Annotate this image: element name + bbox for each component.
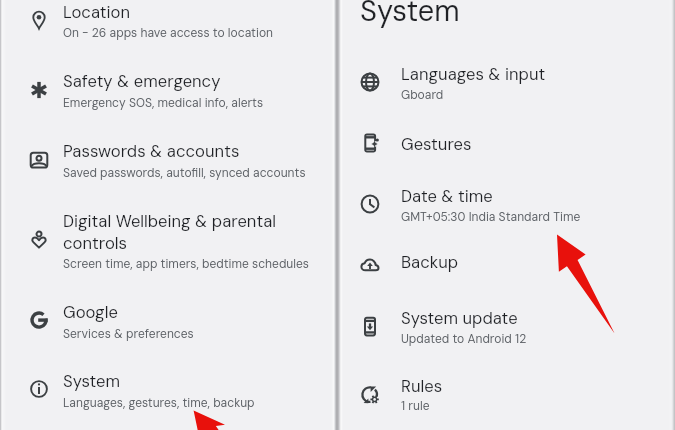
staticText: Gestures [401,134,472,156]
staticText: Languages, gestures, time, backup [63,395,255,411]
staticText: Languages & input [401,64,546,86]
staticText: Rules [401,376,443,398]
button[interactable]: Gestures [346,126,663,164]
staticText: Passwords & accounts [63,141,240,163]
staticText: On - 26 apps have access to location [63,25,273,41]
button[interactable]: Date and time [346,178,663,233]
button[interactable]: Backup [346,246,663,284]
button[interactable]: Safety and emergency [15,63,325,118]
button[interactable]: System [15,363,325,418]
button[interactable]: Rules [346,369,663,424]
button[interactable]: Passwords and accounts [15,133,325,188]
staticText: GMT+05:30 India Standard Time [401,209,581,225]
button[interactable]: Google [15,294,325,349]
staticText: Backup [401,252,459,274]
staticText: Emergency SOS, medical info, alerts [63,95,264,111]
staticText: Services & preferences [63,326,194,342]
button[interactable]: Digital Wellbeing and parental controls [15,203,293,279]
staticText: Updated to Android 12 [401,331,527,347]
staticText: System [63,371,121,393]
staticText: 1 rule [401,398,430,414]
staticText: Location [63,2,131,24]
staticText: Digital Wellbeing & parental controls [63,211,293,255]
staticText: System [360,0,460,30]
button[interactable]: Location [15,0,326,49]
staticText: Date & time [401,186,493,208]
staticText: Screen time, app timers, bedtime schedul… [63,256,309,272]
button[interactable]: System update [346,300,663,355]
staticText: Safety & emergency [63,71,221,93]
staticText: Saved passwords, autofill, synced accoun… [63,165,306,181]
button[interactable]: Languages and input [346,56,663,111]
staticText: Google [63,302,118,324]
staticText: System update [401,308,518,330]
staticText: Gboard [401,87,444,103]
